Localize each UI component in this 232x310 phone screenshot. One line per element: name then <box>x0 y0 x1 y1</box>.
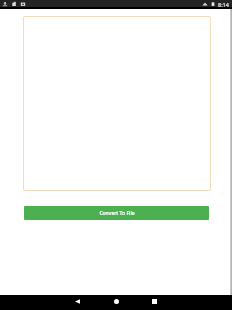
button[interactable]: Recent apps <box>147 295 162 308</box>
button[interactable]: Home <box>109 295 124 308</box>
staticText: 8:14 <box>218 1 229 8</box>
button[interactable]: Back <box>70 295 85 308</box>
staticText: Convert To File <box>99 210 135 217</box>
button[interactable]: Convert To File <box>24 206 209 220</box>
